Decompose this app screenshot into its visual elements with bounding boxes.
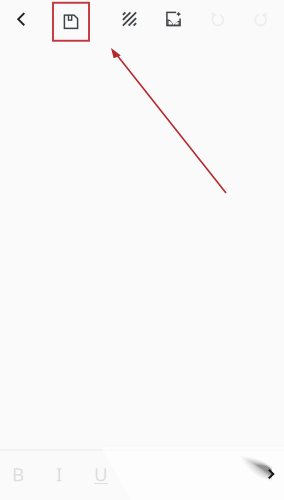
- button[interactable]: Insert image: [153, 0, 193, 38]
- staticText: B: [12, 462, 24, 486]
- button[interactable]: B: [0, 452, 38, 496]
- staticText: I: [56, 462, 62, 486]
- button[interactable]: I: [39, 452, 79, 496]
- button[interactable]: More formatting: [256, 452, 284, 496]
- button[interactable]: Scribble: [109, 0, 149, 38]
- staticText: U: [94, 462, 108, 486]
- button[interactable]: U: [81, 452, 121, 496]
- button[interactable]: Back: [4, 0, 38, 38]
- button[interactable]: Save: [52, 2, 90, 42]
